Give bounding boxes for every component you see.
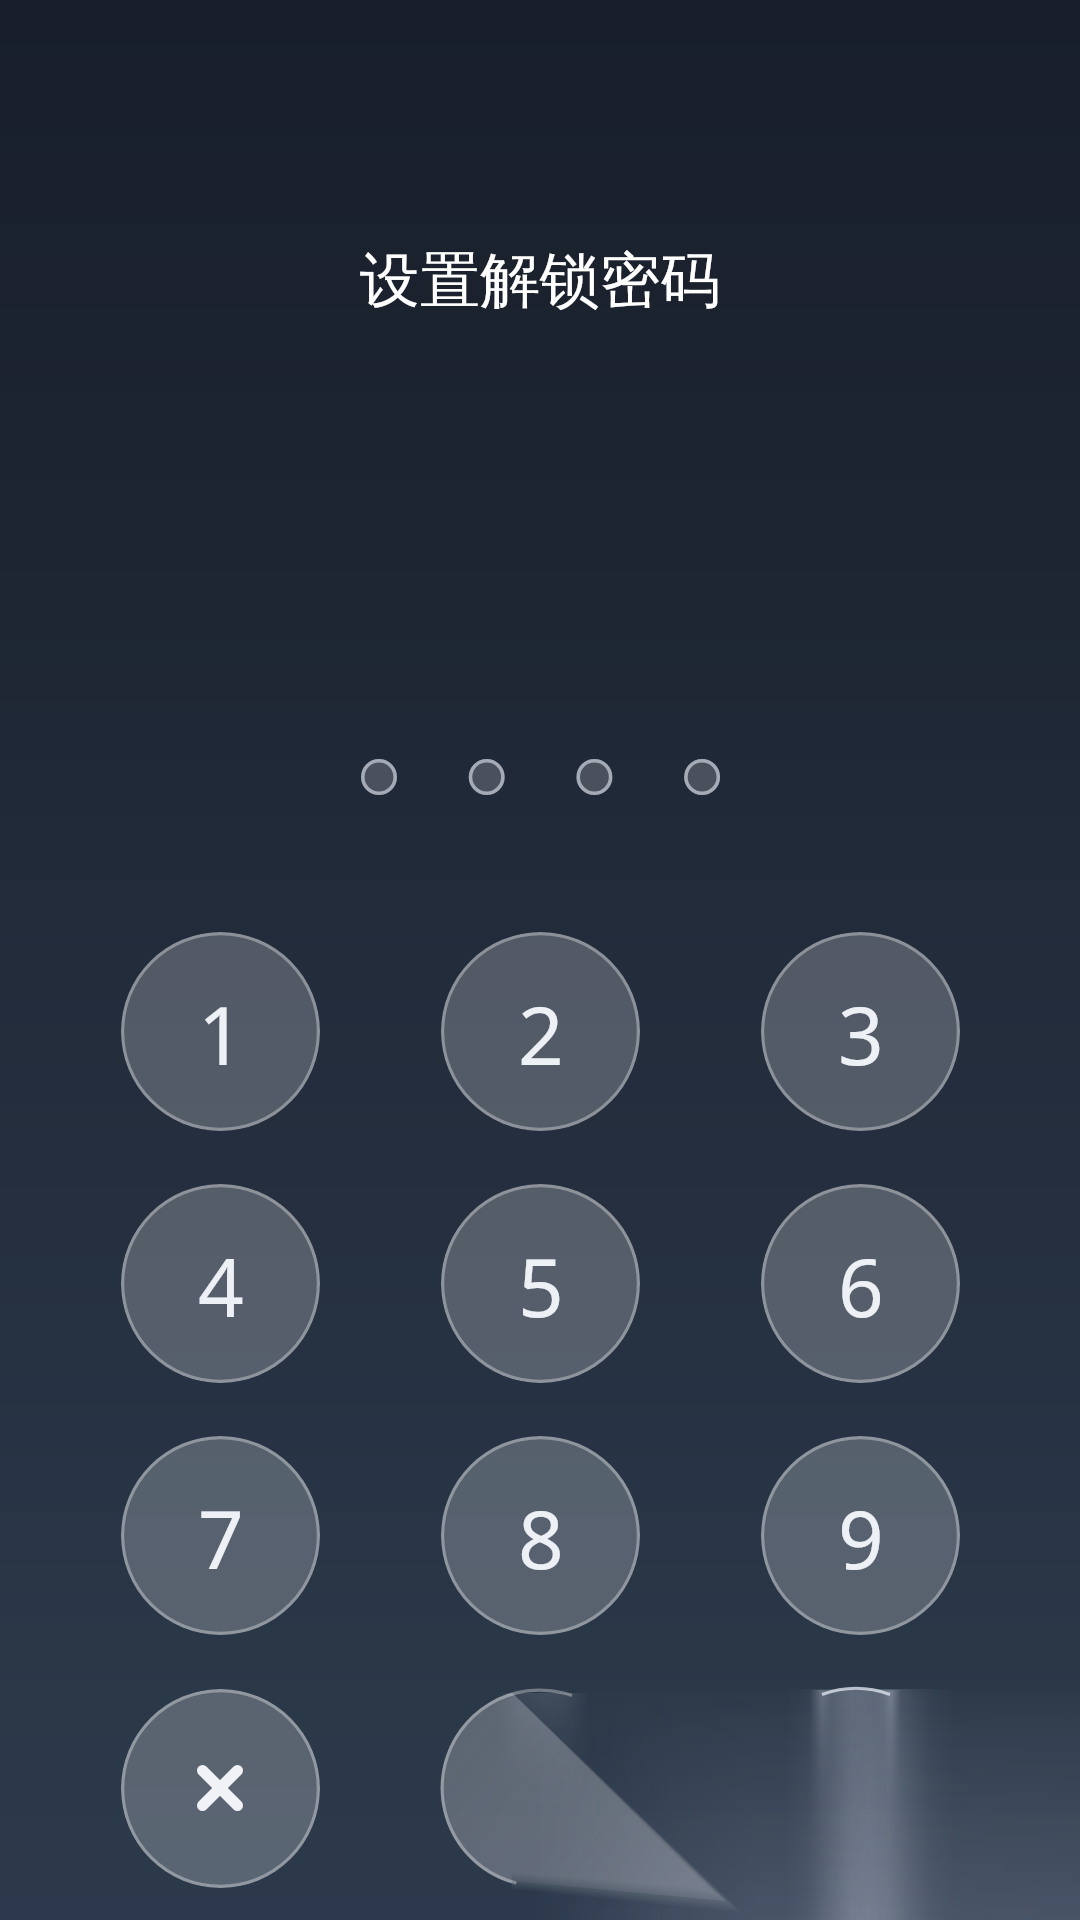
button[interactable]: 5 bbox=[441, 1184, 640, 1383]
staticText: 6 bbox=[838, 1231, 884, 1340]
button[interactable]: Clear bbox=[121, 1689, 320, 1888]
staticText: 8 bbox=[518, 1483, 564, 1592]
staticText: 2 bbox=[518, 979, 564, 1088]
button[interactable]: Confirm bbox=[761, 1689, 960, 1888]
button[interactable]: 8 bbox=[441, 1436, 640, 1635]
staticText: 设置解锁密码 bbox=[360, 243, 720, 315]
staticText: 9 bbox=[838, 1483, 884, 1592]
button[interactable]: Zero bbox=[441, 1689, 640, 1888]
button[interactable]: 6 bbox=[761, 1184, 960, 1383]
button[interactable]: 3 bbox=[761, 932, 960, 1131]
staticText: 1 bbox=[198, 979, 244, 1088]
staticText: 5 bbox=[518, 1231, 564, 1340]
button[interactable]: 7 bbox=[121, 1436, 320, 1635]
staticText: 3 bbox=[838, 979, 884, 1088]
button[interactable]: 4 bbox=[121, 1184, 320, 1383]
button[interactable]: 1 bbox=[121, 932, 320, 1131]
staticText: 7 bbox=[198, 1483, 244, 1592]
button[interactable]: 9 bbox=[761, 1436, 960, 1635]
button[interactable]: 2 bbox=[441, 932, 640, 1131]
staticText: 4 bbox=[198, 1231, 244, 1340]
